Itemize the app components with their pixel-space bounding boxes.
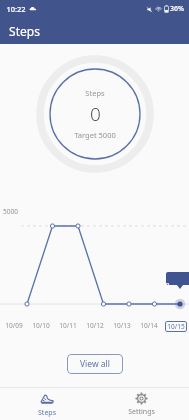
staticText: 10/13 <box>113 321 131 330</box>
staticText: 0 <box>90 101 101 127</box>
staticText: Steps <box>85 88 105 98</box>
staticText: Steps <box>38 408 56 418</box>
staticText: 5000 <box>3 207 18 216</box>
staticText: 10/12 <box>86 321 104 330</box>
staticText: 10:22 <box>6 4 26 14</box>
button[interactable]: Settings <box>94 388 189 420</box>
staticText: 10/10 <box>32 321 50 330</box>
staticText: View all <box>80 358 110 370</box>
button[interactable]: View all <box>67 354 123 374</box>
staticText: 10/14 <box>140 321 158 330</box>
staticText: 10/15 <box>167 322 185 331</box>
other: Settings <box>135 392 148 405</box>
staticText: 10/09 <box>5 321 23 330</box>
staticText: 0 <box>165 281 170 291</box>
button[interactable]: Steps <box>0 388 94 420</box>
staticText: Steps <box>9 23 40 39</box>
staticText: 10/11 <box>59 321 77 330</box>
staticText: 36% <box>170 4 184 14</box>
staticText: Target 5000 <box>74 130 116 140</box>
staticText: Settings <box>128 407 155 417</box>
other: Steps <box>40 392 54 406</box>
